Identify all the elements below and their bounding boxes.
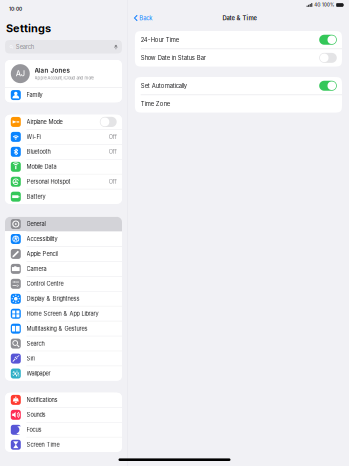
staticText: Bluetooth <box>26 148 50 155</box>
staticText: Display & Brightness <box>26 295 79 302</box>
staticText: Mobile Data <box>26 163 56 170</box>
button[interactable]: Accessibility <box>5 232 122 246</box>
button[interactable]: AJ <box>5 60 122 87</box>
staticText: Focus <box>26 426 41 433</box>
staticText: Settings <box>6 22 51 35</box>
staticText: Screen Time <box>26 441 59 448</box>
button[interactable]: Back <box>128 11 156 25</box>
button[interactable]: Airplane Mode <box>5 115 122 129</box>
staticText: Sounds <box>26 411 45 418</box>
button[interactable]: General <box>5 217 122 231</box>
button[interactable]: Mobile Data <box>5 160 122 174</box>
button[interactable]: Family <box>5 88 122 102</box>
button[interactable]: Home Screen & App Library <box>5 306 122 321</box>
button[interactable]: Camera <box>5 262 122 276</box>
staticText: Back <box>139 14 152 22</box>
staticText: Date & Time <box>223 14 257 22</box>
staticText: General <box>26 221 45 227</box>
button[interactable]: Screen Time <box>5 437 122 452</box>
staticText: 100% <box>322 2 334 8</box>
button[interactable]: Siri <box>5 351 122 366</box>
button[interactable]: Wallpaper <box>5 366 122 381</box>
staticText: Notifications <box>26 396 57 403</box>
staticText: Search <box>26 340 44 347</box>
staticText: Time Zone <box>141 100 170 107</box>
button[interactable]: Battery <box>5 189 122 204</box>
staticText: Apple Pencil <box>26 250 57 257</box>
button[interactable]: Control Centre <box>5 277 122 291</box>
staticText: Off <box>109 178 117 185</box>
staticText: 4G <box>314 2 320 8</box>
staticText: Family <box>26 92 42 98</box>
button[interactable]: Apple Pencil <box>5 247 122 261</box>
staticText: 24-Hour Time <box>141 36 179 43</box>
button[interactable]: Notifications <box>5 393 122 407</box>
staticText: Off <box>109 133 117 140</box>
button[interactable]: Search <box>5 336 122 351</box>
staticText: Show Date in Status Bar <box>141 54 206 61</box>
button[interactable]: Bluetooth <box>5 145 122 159</box>
staticText: Control Centre <box>26 280 63 287</box>
staticText: 10:00 <box>9 6 22 12</box>
staticText: Set Automatically <box>141 82 187 89</box>
button[interactable]: Multitasking & Gestures <box>5 321 122 336</box>
staticText: Alan Jones <box>34 67 69 74</box>
staticText: Airplane Mode <box>26 118 62 125</box>
staticText: Siri <box>26 355 34 362</box>
staticText: AJ <box>16 69 25 78</box>
staticText: Multitasking & Gestures <box>26 325 87 332</box>
button[interactable]: Wi-Fi <box>5 130 122 144</box>
staticText: Battery <box>26 193 45 200</box>
button[interactable]: Display & Brightness <box>5 292 122 306</box>
button[interactable]: Focus <box>5 423 122 437</box>
staticText: Off <box>109 148 117 155</box>
button[interactable]: Personal Hotspot <box>5 174 122 189</box>
button[interactable]: Sounds <box>5 408 122 422</box>
staticText: Accessibility <box>26 236 57 242</box>
staticText: Wallpaper <box>26 370 50 377</box>
staticText: Apple Account, iCloud and more <box>34 76 93 81</box>
staticText: Camera <box>26 265 46 272</box>
staticText: Search <box>16 43 34 50</box>
staticText: Wi-Fi <box>26 133 40 140</box>
staticText: Home Screen & App Library <box>26 310 98 317</box>
staticText: Personal Hotspot <box>26 178 70 185</box>
